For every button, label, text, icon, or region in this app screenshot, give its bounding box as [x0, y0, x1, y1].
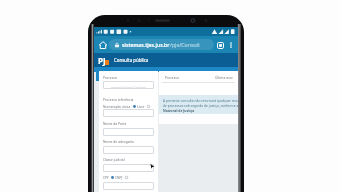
button[interactable]: Home: [97, 39, 109, 51]
button[interactable]: [103, 128, 154, 136]
staticText: PJe: [98, 55, 110, 66]
button[interactable]: [103, 182, 154, 190]
staticText: CNPJ: [115, 175, 123, 179]
staticText: Classe judicial: [103, 157, 125, 161]
staticText: de processos sob segredo de justiça, con…: [163, 103, 239, 107]
staticText: Processo referência: [103, 97, 134, 101]
staticText: /pje/Consult: [170, 41, 200, 48]
staticText: Nacional de Justiça: [163, 108, 195, 112]
staticText: Nome do advogado: [103, 139, 134, 143]
staticText: Numeração única: [103, 104, 131, 108]
staticText: Consulta pública: [114, 57, 149, 63]
button[interactable]: [103, 164, 154, 172]
staticText: CPF: [103, 175, 109, 179]
button[interactable]: [103, 146, 154, 154]
staticText: Nome da Parte: [103, 121, 127, 125]
button[interactable]: Tabs: [214, 39, 226, 51]
staticText: sistemas.tjes.jus.br: [122, 41, 170, 48]
button[interactable]: sistemas.tjes.jus.br: [109, 39, 214, 50]
staticText: A presente consulta não retornará qualqu…: [163, 98, 239, 102]
button[interactable]: [103, 109, 154, 117]
staticText: Livre: [137, 104, 145, 108]
button[interactable]: _______-__.____._.__.____: [103, 81, 154, 89]
staticText: Processo: [165, 75, 179, 79]
staticText: _______-__.____._.__.____: [111, 83, 146, 88]
staticText: Processo: [103, 75, 117, 79]
button[interactable]: More options: [226, 40, 235, 49]
staticText: Última mov: [215, 75, 233, 79]
